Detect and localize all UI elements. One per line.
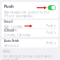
staticText: New messages are pushed to this bbox=[4, 11, 49, 14]
staticText: Fetch bbox=[46, 42, 53, 45]
staticText: Gmail bbox=[4, 20, 13, 23]
staticText: iCloud bbox=[4, 29, 14, 32]
staticText: Mail, Contacts, Calendars bbox=[4, 25, 23, 32]
staticText: Auto-Fetch bbox=[4, 39, 19, 43]
staticText: Push bbox=[46, 31, 53, 35]
button[interactable]: Gmail bbox=[1, 20, 58, 28]
staticText: MORE bbox=[3, 50, 10, 53]
staticText: Push bbox=[46, 24, 53, 28]
staticText: Scheduled bbox=[4, 44, 19, 47]
staticText: Contacts, Calendars bbox=[4, 33, 30, 37]
button[interactable]: Push bbox=[1, 2, 58, 11]
staticText: iPhone automatically. bbox=[4, 14, 33, 18]
button[interactable]: Auto-Fetch bbox=[1, 39, 58, 47]
button[interactable]: iCloud bbox=[1, 29, 58, 37]
staticText: Push bbox=[4, 4, 14, 9]
staticText: The schedule below is used when push is … bbox=[3, 55, 52, 60]
